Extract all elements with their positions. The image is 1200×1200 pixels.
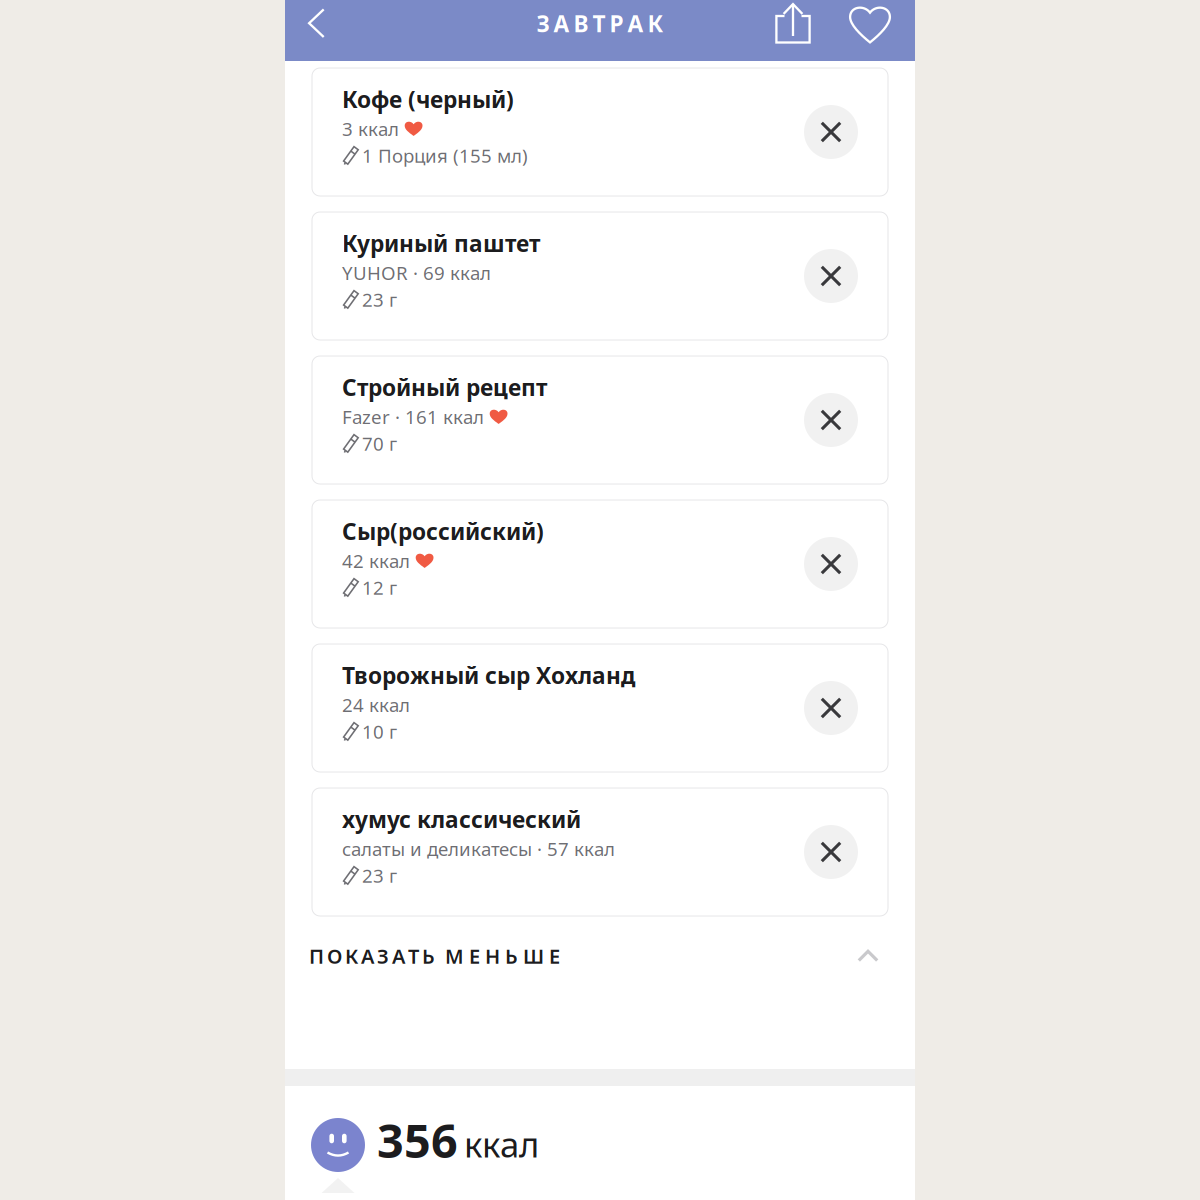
staticText: хумус классический — [342, 804, 581, 834]
button[interactable]: Удалить — [804, 681, 858, 735]
staticText: 24 ккал — [342, 692, 410, 717]
staticText: Стройный рецепт — [342, 372, 547, 402]
staticText: салаты и деликатесы · 57 ккал — [342, 836, 615, 861]
staticText: 23 г — [362, 287, 397, 312]
button[interactable]: Удалить — [804, 537, 858, 591]
staticText: Fazer · 161 ккал — [342, 404, 484, 429]
staticText: 42 ккал — [342, 548, 410, 573]
staticText: Куриный паштет — [342, 228, 540, 258]
staticText: 356 — [377, 1109, 458, 1171]
button[interactable]: П О К А З А Т Ь М Е Н Ь Ш Е — [285, 916, 915, 996]
button[interactable]: Избранное — [841, 0, 899, 47]
button[interactable]: Удалить — [804, 825, 858, 879]
button[interactable]: Удалить — [804, 393, 858, 447]
staticText: З А В Т Р А К — [536, 8, 663, 38]
staticText: Сыр(российский) — [342, 516, 544, 546]
button[interactable]: Удалить — [804, 249, 858, 303]
staticText: 70 г — [362, 431, 397, 456]
staticText: 1 Порция (155 мл) — [362, 143, 528, 168]
staticText: 12 г — [362, 575, 397, 600]
staticText: П О К А З А Т Ь М Е Н Ь Ш Е — [309, 943, 560, 969]
staticText: 23 г — [362, 863, 397, 888]
staticText: Творожный сыр Хохланд — [342, 660, 635, 690]
staticText: 10 г — [362, 719, 397, 744]
button[interactable]: Назад — [285, 0, 348, 47]
staticText: Кофе (черный) — [342, 84, 514, 114]
button[interactable]: Удалить — [804, 105, 858, 159]
staticText: 3 ккал — [342, 116, 399, 141]
button[interactable]: Поделиться — [764, 0, 822, 47]
staticText: ккал — [464, 1121, 539, 1167]
staticText: YUHOR · 69 ккал — [342, 260, 491, 285]
